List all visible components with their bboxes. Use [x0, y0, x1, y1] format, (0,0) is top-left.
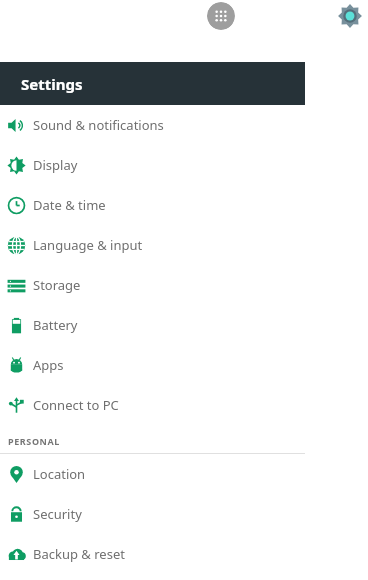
button[interactable]: Display: [0, 145, 305, 185]
button[interactable]: Sound & notifications: [0, 105, 305, 145]
button[interactable]: Apps: [0, 345, 305, 385]
staticText: Storage: [33, 276, 81, 294]
button[interactable]: Battery: [0, 305, 305, 345]
staticText: Settings: [21, 74, 83, 94]
staticText: Security: [33, 505, 82, 523]
staticText: Apps: [33, 356, 64, 374]
staticText: Language & input: [33, 236, 143, 254]
button[interactable]: Connect to PC: [0, 385, 305, 425]
staticText: Sound & notifications: [33, 116, 164, 134]
button[interactable]: Settings: [0, 62, 305, 105]
staticText: Display: [33, 156, 78, 174]
button[interactable]: Security: [0, 494, 305, 534]
button[interactable]: All apps: [207, 2, 235, 30]
staticText: Connect to PC: [33, 396, 119, 414]
button[interactable]: Backup & reset: [0, 534, 305, 574]
button[interactable]: Location: [0, 454, 305, 494]
button[interactable]: Settings: [336, 2, 364, 30]
staticText: Location: [33, 465, 86, 483]
staticText: Battery: [33, 316, 78, 334]
button[interactable]: Date & time: [0, 185, 305, 225]
staticText: Date & time: [33, 196, 106, 214]
staticText: PERSONAL: [8, 435, 60, 447]
button[interactable]: Language & input: [0, 225, 305, 265]
button[interactable]: Storage: [0, 265, 305, 305]
staticText: Backup & reset: [33, 545, 125, 563]
